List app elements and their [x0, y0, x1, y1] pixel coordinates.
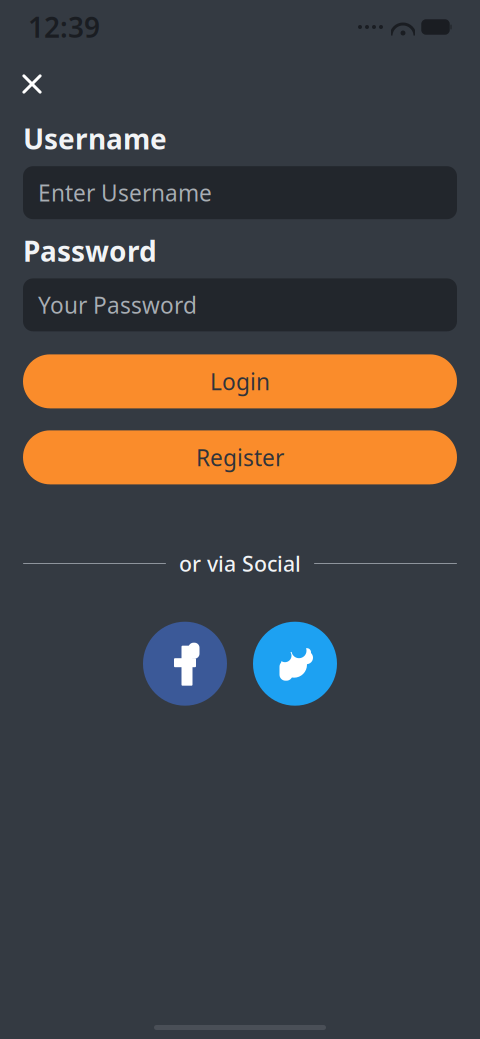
button[interactable]: Enter Username: [23, 166, 457, 219]
staticText: Register: [196, 442, 284, 472]
button[interactable]: Your Password: [23, 278, 457, 331]
button[interactable]: Sign in with Facebook: [143, 622, 227, 706]
staticText: 12:39: [28, 8, 100, 46]
button[interactable]: Register: [23, 430, 457, 484]
staticText: Password: [23, 232, 157, 269]
button[interactable]: Close: [10, 62, 54, 106]
staticText: Login: [210, 366, 270, 396]
button[interactable]: Sign in with Twitter: [253, 622, 337, 706]
button[interactable]: Login: [23, 354, 457, 408]
staticText: Your Password: [38, 290, 197, 320]
staticText: Username: [23, 120, 167, 157]
staticText: or via Social: [179, 549, 301, 578]
staticText: Enter Username: [38, 178, 212, 208]
